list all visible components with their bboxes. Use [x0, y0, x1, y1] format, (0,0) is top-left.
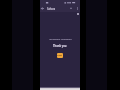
button[interactable]: More options	[75, 4, 79, 12]
staticText: Next	[57, 54, 63, 57]
staticText: Sahara	[47, 7, 56, 10]
staticText: Thank you	[53, 44, 67, 48]
button[interactable]: Collapse	[69, 4, 73, 12]
button[interactable]: Back	[40, 4, 45, 12]
button[interactable]: Next	[57, 53, 63, 58]
staticText: Enrollment completed	[49, 38, 72, 41]
